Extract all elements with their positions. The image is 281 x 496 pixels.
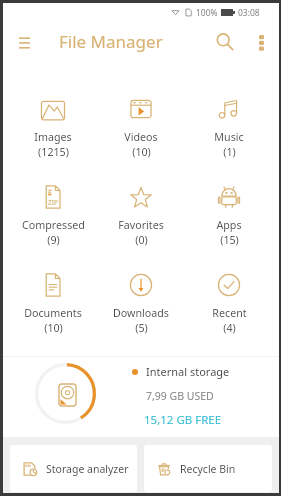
staticText: (10) (44, 321, 63, 336)
staticText: Recent (212, 306, 247, 321)
staticText: Music (214, 130, 244, 145)
button[interactable]: Documents (9, 263, 97, 351)
button[interactable]: Images (9, 87, 97, 175)
staticText: 100% (196, 7, 218, 19)
staticText: Documents (24, 306, 82, 321)
staticText: 7,99 GB USED (146, 389, 214, 403)
staticText: Compressed (22, 218, 85, 233)
staticText: 15,12 GB FREE (144, 412, 222, 428)
button[interactable]: More options (248, 29, 274, 55)
staticText: (4) (223, 321, 236, 336)
button[interactable]: Internal storage (3, 357, 279, 437)
staticText: Images (34, 130, 72, 145)
staticText: Recycle Bin (180, 462, 236, 476)
staticText: (0) (135, 233, 148, 248)
button[interactable]: Favorites (97, 175, 185, 263)
staticText: Storage analyzer (46, 462, 129, 476)
staticText: Internal storage (146, 364, 230, 379)
button[interactable]: Recent (185, 263, 273, 351)
button[interactable]: Music (185, 87, 273, 175)
staticText: Apps (216, 218, 242, 233)
staticText: (15) (220, 233, 239, 248)
staticText: (1215) (38, 145, 69, 160)
staticText: ZIP (48, 198, 58, 207)
button[interactable]: Recycle Bin (144, 445, 272, 492)
button[interactable]: ZIP (9, 175, 97, 263)
staticText: Videos (124, 130, 158, 145)
button[interactable]: Storage analyzer (10, 445, 137, 492)
staticText: File Manager (59, 30, 163, 53)
staticText: Favorites (118, 218, 164, 233)
staticText: (1) (223, 145, 236, 160)
staticText: (5) (135, 321, 148, 336)
button[interactable]: Menu (11, 30, 37, 56)
staticText: (10) (132, 145, 151, 160)
staticText: 03:08 (238, 7, 260, 19)
staticText: Downloads (113, 306, 169, 321)
button[interactable]: Videos (97, 87, 185, 175)
button[interactable]: Search (211, 28, 238, 55)
button[interactable]: Downloads (97, 263, 185, 351)
button[interactable]: Apps (185, 175, 273, 263)
staticText: (9) (47, 233, 60, 248)
